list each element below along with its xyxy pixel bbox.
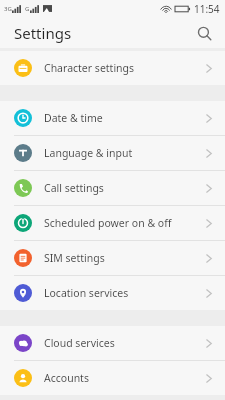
button[interactable]: Cloud services [0,326,225,360]
button[interactable]: Scheduled power on & off [0,206,225,240]
button[interactable]: SIM settings [0,241,225,275]
staticText: Settings [14,23,72,43]
button[interactable]: Character settings [0,51,225,85]
staticText: Language & input [44,146,205,160]
button[interactable]: Call settings [0,171,225,205]
staticText: Scheduled power on & off [44,216,205,230]
button[interactable]: Language & input [0,136,225,170]
staticText: SIM settings [44,251,205,265]
button[interactable]: Location services [0,276,225,310]
button[interactable]: Date & time [0,101,225,135]
staticText: Accounts [44,371,205,385]
staticText: 11:54 [194,2,220,16]
staticText: Character settings [44,61,205,75]
staticText: Call settings [44,181,205,195]
staticText: Date & time [44,111,205,125]
button[interactable]: Search [191,20,217,46]
staticText: G [25,5,30,13]
staticText: Location services [44,286,205,300]
staticText: Cloud services [44,336,205,350]
staticText: 3G [4,5,12,13]
button[interactable]: Accounts [0,361,225,395]
